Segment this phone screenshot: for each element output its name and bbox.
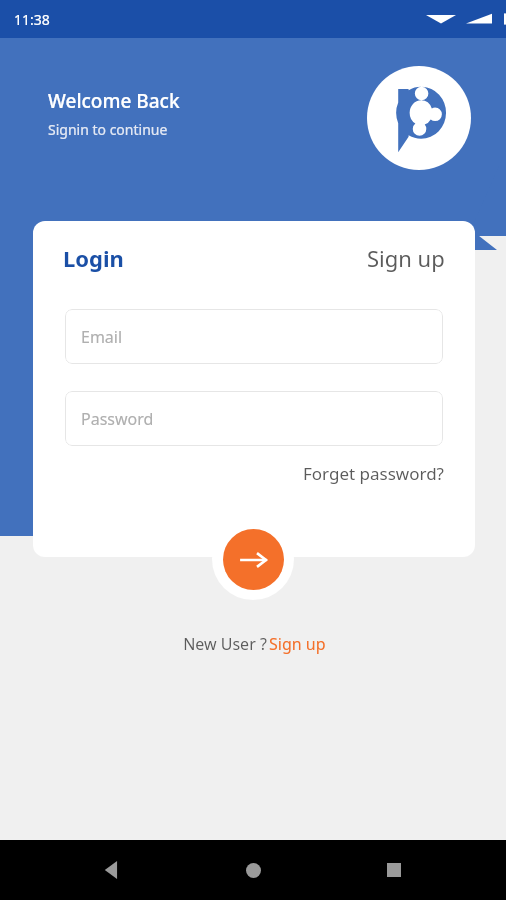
button[interactable]: Home xyxy=(224,841,282,899)
button[interactable]: Login xyxy=(63,243,124,273)
staticText: Welcome Back xyxy=(48,88,180,114)
staticText: Sign up xyxy=(367,243,445,273)
staticText: New User ? xyxy=(181,633,269,655)
button[interactable]: Email xyxy=(65,309,443,364)
other: App logo xyxy=(367,66,471,170)
button[interactable]: Sign in xyxy=(212,518,294,600)
button[interactable]: Forget password? xyxy=(303,462,444,485)
button[interactable]: Sign up xyxy=(367,243,445,273)
button[interactable]: Back xyxy=(83,841,141,899)
staticText: Signin to continue xyxy=(48,120,168,139)
button[interactable]: Recent apps xyxy=(365,841,423,899)
staticText: Password xyxy=(81,408,154,430)
staticText: 11:38 xyxy=(14,10,50,29)
staticText: Login xyxy=(63,243,124,273)
button[interactable]: Sign up xyxy=(269,633,326,655)
staticText: Email xyxy=(81,326,123,348)
button[interactable]: Password xyxy=(65,391,443,446)
staticText: Sign up xyxy=(269,633,326,655)
staticText: Forget password? xyxy=(303,462,444,485)
